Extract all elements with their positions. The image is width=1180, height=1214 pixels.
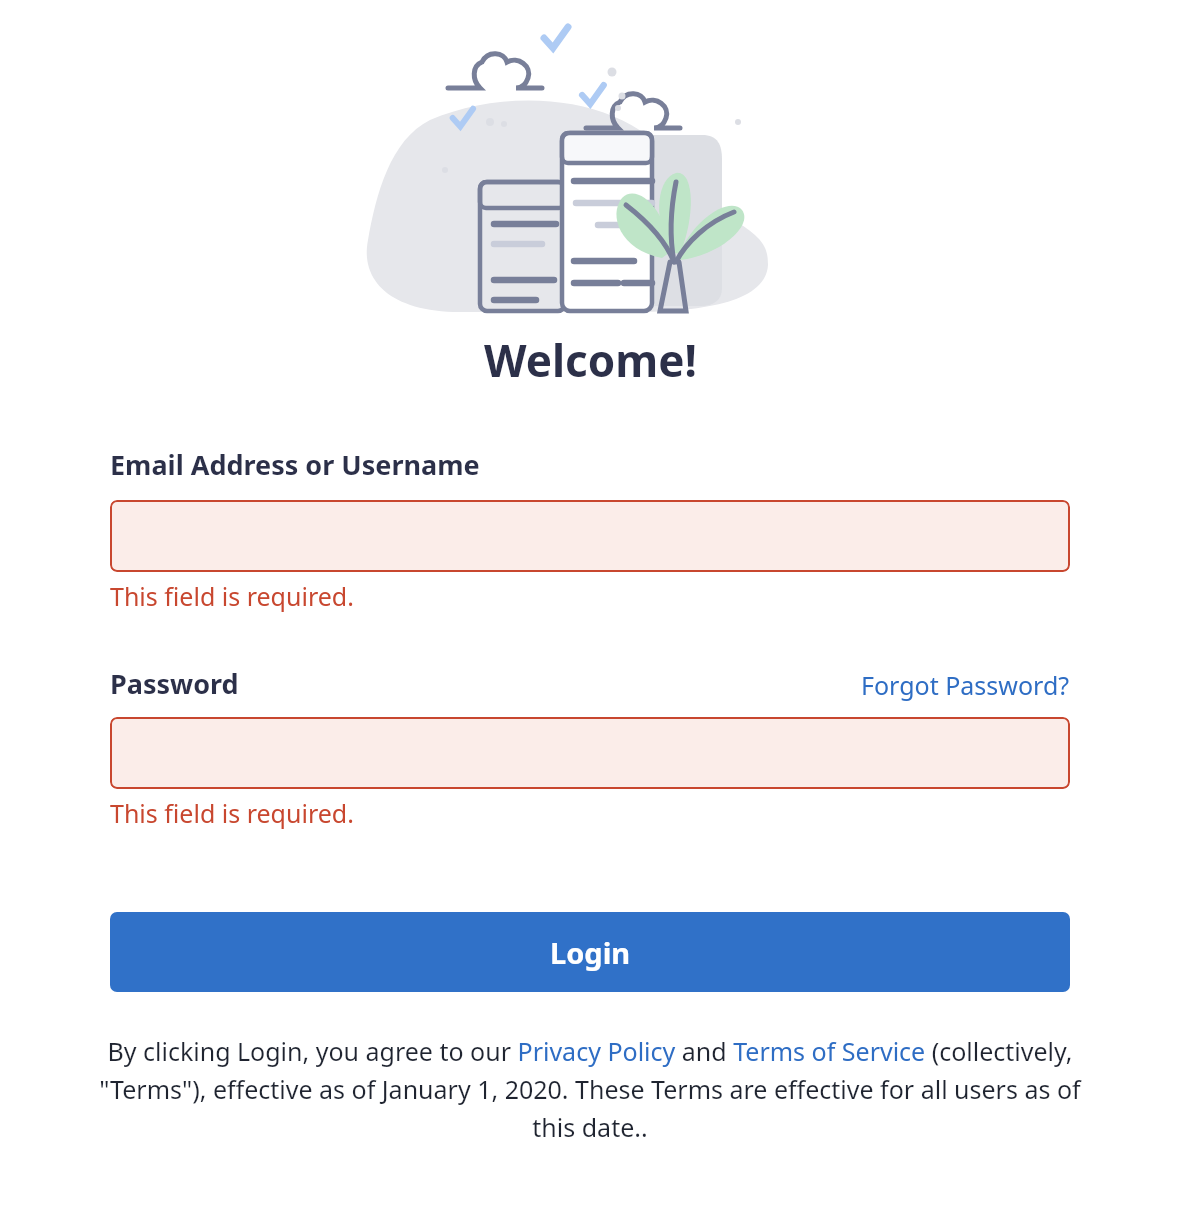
button[interactable]: Forgot Password? — [861, 668, 1070, 702]
staticText: Welcome! — [484, 330, 697, 390]
staticText: This field is required. — [110, 796, 354, 830]
staticText: Login — [550, 933, 631, 972]
staticText: By clicking Login, you agree to our Priv… — [95, 1034, 1085, 1144]
staticText: This field is required. — [110, 579, 354, 613]
staticText: Email Address or Username — [110, 446, 480, 483]
staticText: Forgot Password? — [861, 668, 1070, 702]
button[interactable]: Login — [110, 912, 1070, 992]
button[interactable] — [110, 717, 1070, 789]
staticText: Password — [110, 665, 239, 702]
button[interactable] — [110, 500, 1070, 572]
